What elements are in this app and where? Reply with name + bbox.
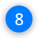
- staticText: 8: [14, 8, 23, 30]
- button[interactable]: 8 notifications: [5, 5, 32, 32]
